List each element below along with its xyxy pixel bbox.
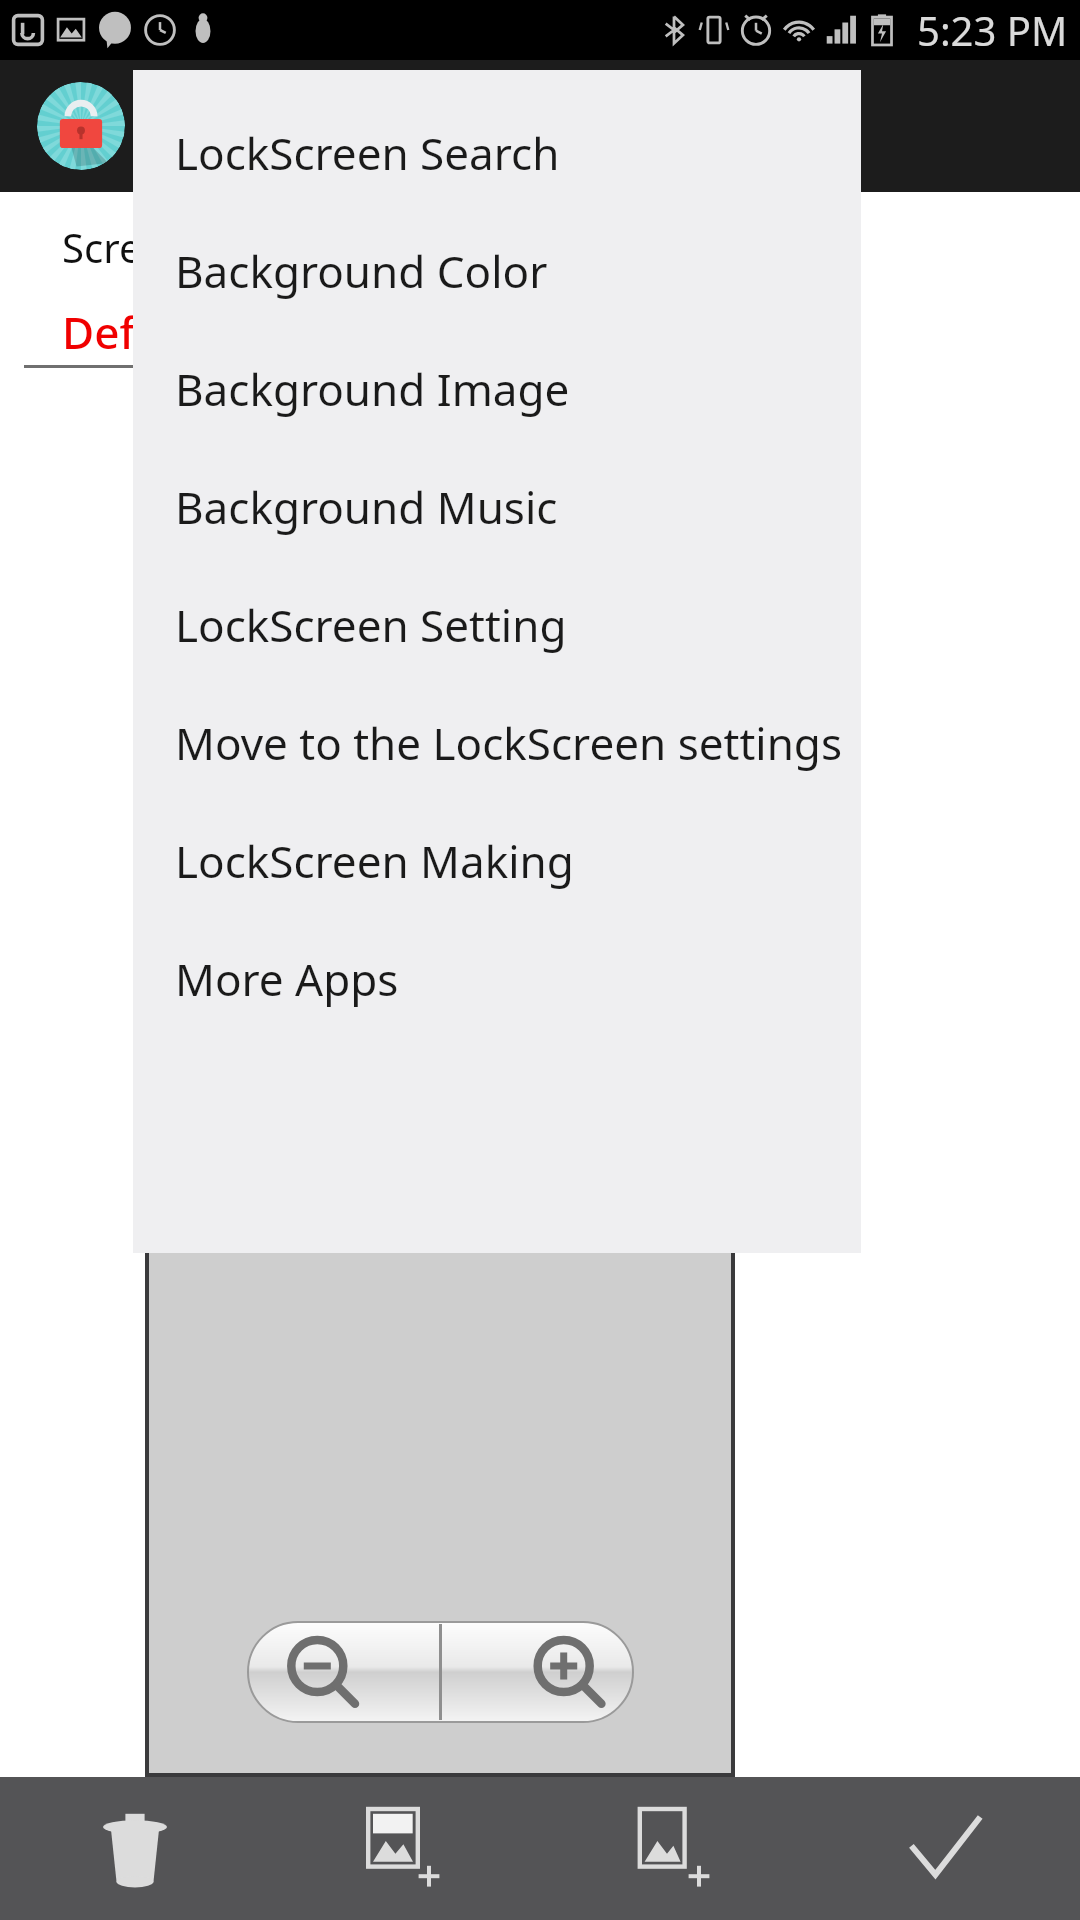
button[interactable]: LockScreen Setting: [133, 566, 861, 684]
button[interactable]: LockScreen Search: [133, 94, 861, 212]
staticText: 5:23 PM: [917, 3, 1068, 57]
staticText: Screen: [62, 220, 189, 274]
button[interactable]: More Apps: [133, 920, 861, 1038]
button[interactable]: Delete: [0, 1777, 270, 1920]
staticText: LockScreen Search: [175, 123, 560, 183]
staticText: Move to the LockScreen settings: [175, 713, 842, 773]
staticText: Default: [62, 302, 217, 362]
button[interactable]: Confirm: [810, 1777, 1080, 1920]
button[interactable]: Add image: [540, 1777, 810, 1920]
staticText: Background Color: [175, 241, 548, 301]
staticText: LockScreen Setting: [175, 595, 567, 655]
button[interactable]: Move to the LockScreen settings: [133, 684, 861, 802]
staticText: Background Image: [175, 359, 570, 419]
button[interactable]: Default: [62, 302, 217, 362]
button[interactable]: Background Color: [133, 212, 861, 330]
button[interactable]: Background Image: [133, 330, 861, 448]
staticText: LockScreen Making: [175, 831, 574, 891]
button[interactable]: Add GIF: [270, 1777, 540, 1920]
button[interactable]: LockScreen Making: [133, 802, 861, 920]
button[interactable]: Background Music: [133, 448, 861, 566]
staticText: Background Music: [175, 477, 558, 537]
staticText: More Apps: [175, 949, 399, 1009]
button[interactable]: App icon: [37, 82, 125, 170]
